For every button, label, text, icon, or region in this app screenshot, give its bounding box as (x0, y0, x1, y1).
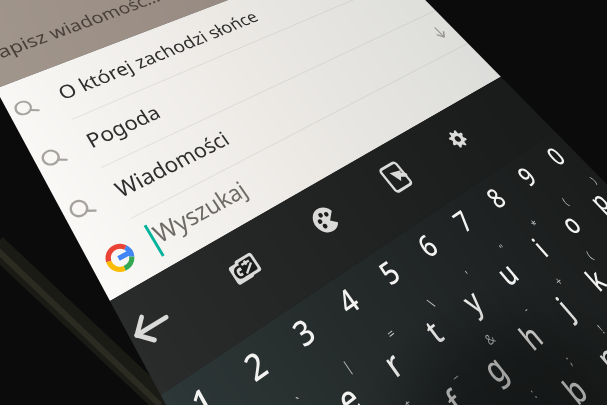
button[interactable]: Keyboard and search suggestions (0, 0, 607, 405)
